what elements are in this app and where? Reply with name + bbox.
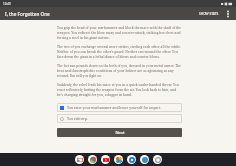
button[interactable]: YouTube	[101, 155, 110, 164]
button[interactable]: You sidestep.	[57, 114, 182, 123]
button[interactable]: Chrome	[88, 155, 97, 164]
staticText: Next	[115, 130, 125, 135]
staticText: SHOW STATS	[199, 12, 219, 16]
staticText: The hot sun pounds down on the both of y…	[57, 63, 182, 78]
staticText: The two of you exchange several more str…	[57, 44, 182, 59]
button[interactable]: More options	[223, 9, 233, 19]
button[interactable]: You raise your warhammer and brace yours…	[57, 103, 182, 112]
button[interactable]: Phone	[127, 155, 136, 164]
staticText: You raise your warhammer and brace yours…	[67, 105, 162, 110]
staticText: Suddenly, the rebel leads his mace at yo…	[57, 82, 182, 97]
button[interactable]: Messages	[153, 155, 162, 164]
button[interactable]: Maps	[140, 155, 149, 164]
button[interactable]: Next	[57, 128, 182, 137]
staticText: You sidestep.	[67, 116, 88, 121]
staticText: You grip the head of your warhammer and …	[57, 25, 182, 40]
button[interactable]: Photos	[114, 155, 123, 164]
staticText: I, the Forgotten One	[5, 11, 50, 17]
button[interactable]: Gmail	[75, 155, 84, 164]
button[interactable]: SHOW STATS	[197, 11, 221, 17]
staticText: 12:45	[3, 2, 11, 6]
